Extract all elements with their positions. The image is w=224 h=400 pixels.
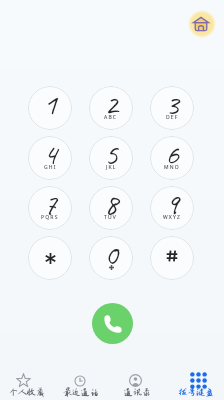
button[interactable]: Home: [186, 8, 218, 40]
staticText: WXYZ: [163, 214, 182, 221]
staticText: 拨号键盘: [178, 387, 214, 397]
button[interactable]: 通讯录: [109, 370, 165, 400]
staticText: ABC: [104, 114, 118, 121]
staticText: 0: [104, 236, 118, 273]
button[interactable]: 拨号键盘: [168, 370, 224, 400]
button[interactable]: 2: [89, 86, 133, 130]
staticText: 7: [43, 186, 57, 223]
staticText: 2: [104, 86, 118, 123]
button[interactable]: 8: [89, 186, 133, 230]
staticText: 4: [43, 136, 57, 173]
button[interactable]: [28, 236, 72, 280]
button[interactable]: 最近通话: [53, 370, 109, 400]
staticText: 通讯录: [124, 387, 151, 397]
button[interactable]: 5: [89, 136, 133, 180]
staticText: 9: [165, 186, 179, 223]
button[interactable]: 7: [28, 186, 72, 230]
staticText: JKL: [106, 164, 117, 171]
button[interactable]: 4: [28, 136, 72, 180]
button[interactable]: 0: [89, 236, 133, 280]
staticText: MNO: [164, 164, 180, 171]
button[interactable]: 1: [28, 86, 72, 130]
button[interactable]: [150, 236, 194, 280]
staticText: 1: [43, 86, 57, 123]
staticText: DEF: [166, 114, 179, 121]
staticText: GHI: [44, 164, 57, 171]
staticText: 个人收藏: [9, 387, 45, 397]
staticText: 6: [165, 136, 179, 173]
staticText: PQRS: [41, 214, 59, 221]
button[interactable]: Call: [92, 303, 133, 344]
staticText: TUV: [104, 214, 118, 221]
button[interactable]: 3: [150, 86, 194, 130]
staticText: 5: [104, 136, 118, 173]
button[interactable]: 9: [150, 186, 194, 230]
staticText: 最近通话: [63, 387, 99, 397]
button[interactable]: 6: [150, 136, 194, 180]
staticText: 8: [104, 186, 118, 223]
button[interactable]: 个人收藏: [0, 370, 55, 400]
staticText: 3: [165, 86, 179, 123]
